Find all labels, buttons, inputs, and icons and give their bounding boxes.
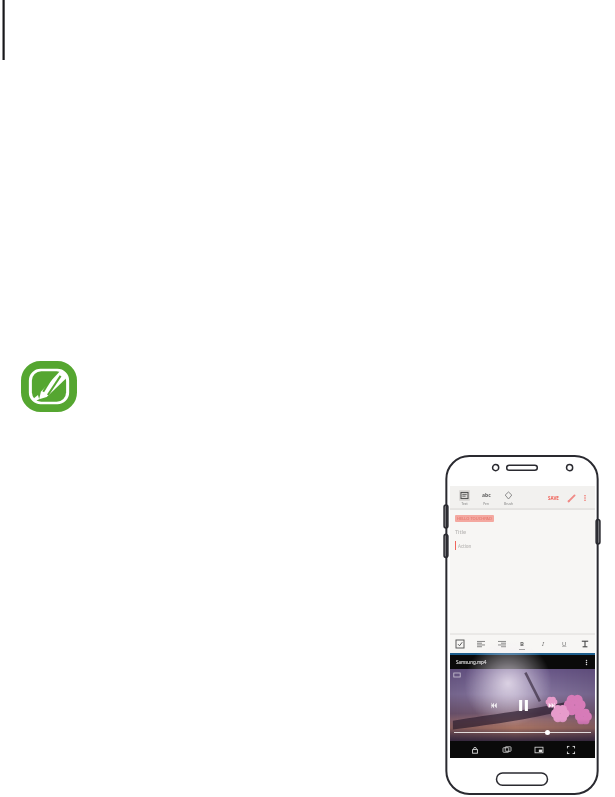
button[interactable]: Cast (453, 671, 461, 679)
button[interactable]: SAVE (546, 495, 561, 501)
staticText: Text (461, 502, 468, 506)
other: Note app icon (20, 360, 78, 413)
staticText: HELLO TOUCHPAD (457, 516, 492, 521)
button[interactable]: Align right (496, 638, 508, 650)
button[interactable]: Full screen (563, 742, 578, 757)
button[interactable]: I (537, 638, 549, 650)
staticText: abc (482, 492, 491, 499)
button[interactable]: Next (546, 700, 557, 711)
button[interactable]: Text style (579, 638, 591, 650)
staticText: Samsung.mp4 (456, 659, 487, 665)
button[interactable]: abc (475, 486, 497, 510)
button[interactable]: U (558, 638, 570, 650)
button[interactable]: Picture in picture (531, 742, 546, 757)
staticText: B (520, 640, 524, 648)
button[interactable]: Edit with pen (566, 493, 577, 504)
button[interactable]: Align left (475, 638, 487, 650)
staticText: SAVE (548, 495, 559, 501)
button[interactable]: Pop-up view (499, 742, 514, 757)
staticText: Brush (504, 502, 513, 506)
staticText: Action (458, 543, 472, 549)
button[interactable]: B (516, 638, 528, 650)
staticText: I (542, 640, 544, 648)
button[interactable]: Lock (467, 742, 482, 757)
staticText: Title (455, 528, 466, 535)
button[interactable]: More options (582, 658, 591, 667)
button[interactable]: Pause (514, 696, 532, 714)
button[interactable]: Text (453, 486, 475, 510)
button[interactable]: Brush (497, 486, 519, 510)
staticText: U (562, 640, 567, 648)
button[interactable]: Previous (489, 700, 500, 711)
button[interactable]: More options (580, 493, 590, 503)
button[interactable]: Checkbox (454, 638, 466, 650)
staticText: Pen (483, 502, 489, 506)
